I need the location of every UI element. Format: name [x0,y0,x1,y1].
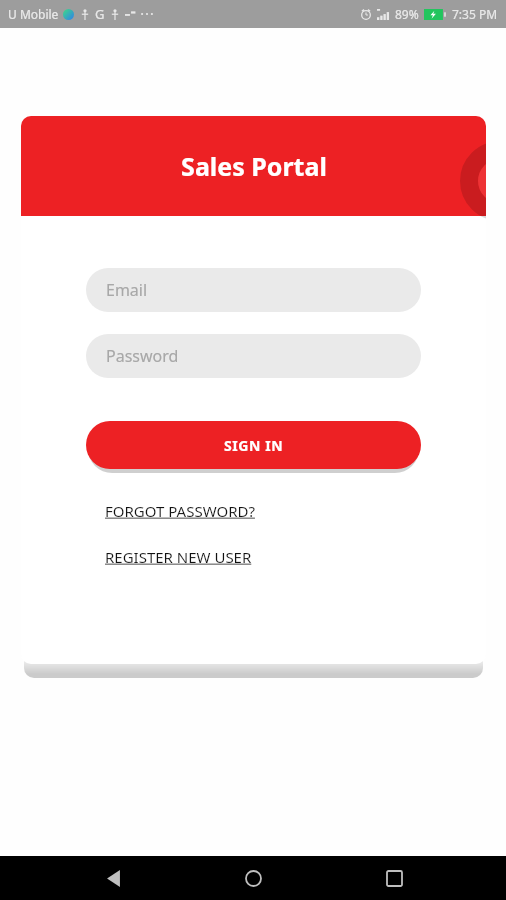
button[interactable]: Back [85,856,141,900]
staticText: FORGOT PASSWORD? [105,501,255,521]
button[interactable]: FORGOT PASSWORD? [105,499,255,523]
staticText: G [95,5,105,23]
button[interactable]: Home [225,856,281,900]
staticText: SIGN IN [224,436,284,455]
staticText: Sales Portal [181,149,327,183]
button[interactable]: Password [86,334,421,378]
button[interactable]: Recent apps [366,856,422,900]
staticText: 89% [395,6,419,22]
staticText: U Mobile [8,6,59,22]
staticText: REGISTER NEW USER [105,547,252,567]
staticText: Password [106,345,179,367]
staticText: Email [106,279,148,301]
staticText: 7:35 PM [452,6,498,22]
button[interactable]: Email [86,268,421,312]
button[interactable]: SIGN IN [86,421,421,469]
button[interactable]: REGISTER NEW USER [105,545,252,569]
